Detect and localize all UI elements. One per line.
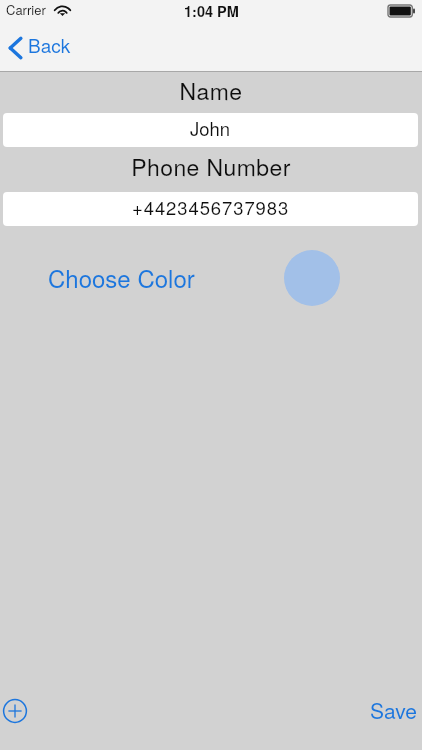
button[interactable]: Back	[3, 31, 83, 64]
staticText: Back	[28, 31, 71, 58]
staticText: Name	[0, 74, 422, 107]
staticText: Carrier	[6, 0, 46, 19]
staticText: Phone Number	[0, 150, 422, 183]
staticText: 1:04 PM	[184, 1, 239, 22]
staticText: John	[190, 115, 231, 141]
button[interactable]: Save	[366, 691, 422, 729]
button[interactable]: Choose Color	[42, 255, 201, 299]
button[interactable]: +4423456737983	[3, 192, 418, 226]
button[interactable]: Selected color	[284, 250, 340, 306]
button[interactable]: Add	[2, 698, 28, 724]
staticText: Save	[370, 695, 418, 725]
staticText: +4423456737983	[132, 194, 290, 220]
staticText: Choose Color	[48, 260, 195, 294]
button[interactable]: John	[3, 113, 418, 147]
